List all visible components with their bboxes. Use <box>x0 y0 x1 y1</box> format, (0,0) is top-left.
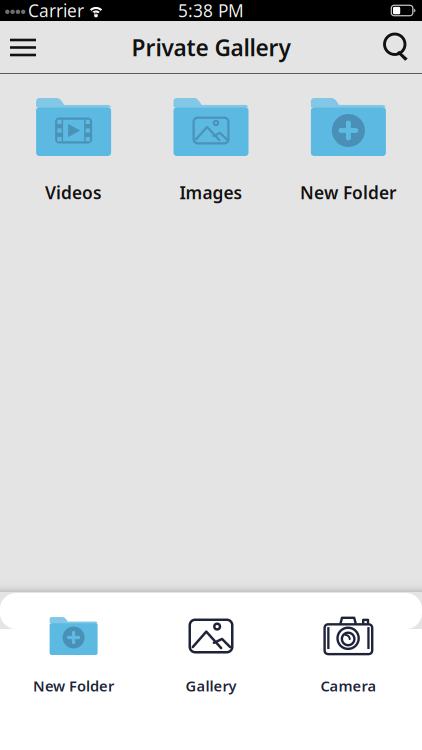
button[interactable]: New Folder <box>5 616 142 695</box>
staticText: Images <box>179 181 242 204</box>
button[interactable]: Search <box>374 21 422 73</box>
staticText: Videos <box>45 181 102 204</box>
staticText: Carrier <box>28 0 84 22</box>
staticText: New Folder <box>300 181 397 204</box>
button[interactable]: Gallery <box>142 616 280 695</box>
button[interactable]: Camera <box>280 616 417 695</box>
staticText: Gallery <box>185 676 236 695</box>
staticText: New Folder <box>33 676 114 695</box>
button[interactable]: Menu <box>0 21 46 73</box>
button[interactable]: New Folder <box>280 98 417 204</box>
button[interactable]: Videos <box>5 98 142 204</box>
staticText: Private Gallery <box>131 32 290 62</box>
staticText: Camera <box>320 676 376 695</box>
staticText: 5:38 PM <box>178 0 244 22</box>
button[interactable]: Images <box>142 98 280 204</box>
